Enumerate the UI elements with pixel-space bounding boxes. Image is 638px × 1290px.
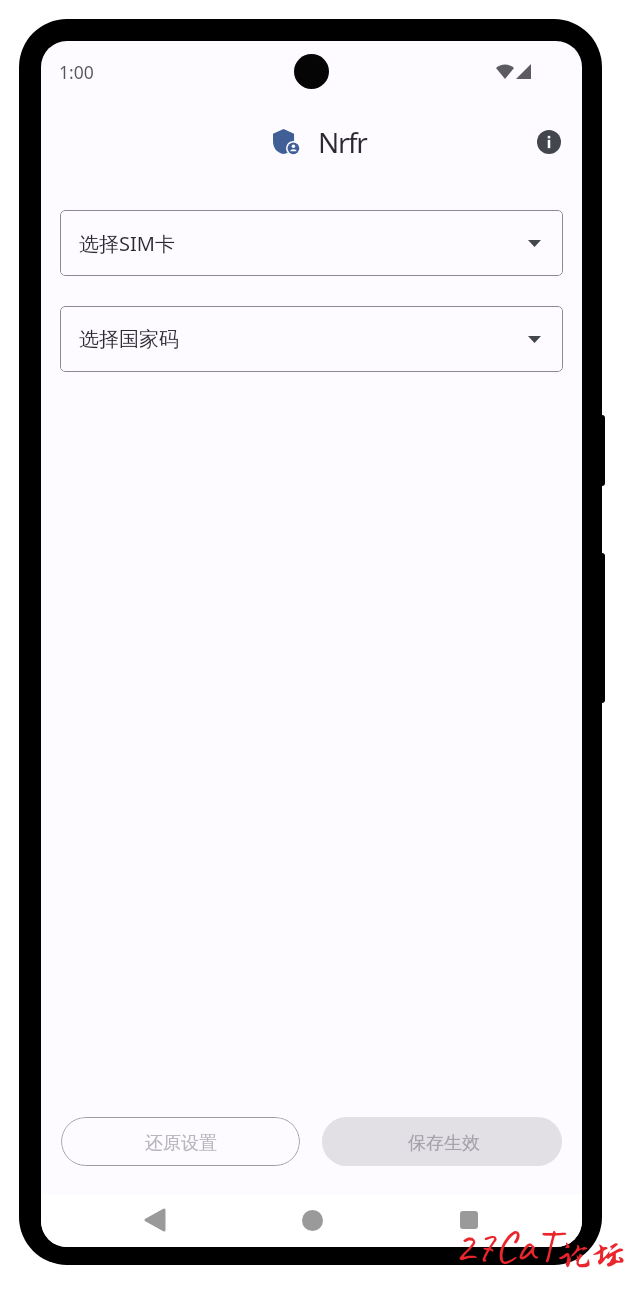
staticText: 1:00 (59, 60, 94, 84)
button[interactable]: Back (131, 1196, 179, 1244)
staticText: 还原设置 (145, 1132, 217, 1155)
button[interactable]: 选择SIM卡 (60, 210, 563, 276)
button[interactable]: About this app (527, 119, 571, 163)
button[interactable]: Home (288, 1196, 336, 1244)
staticText: Nrfr (318, 123, 367, 161)
staticText: 选择SIM卡 (79, 230, 175, 257)
button[interactable]: 还原设置 (61, 1117, 300, 1166)
button[interactable]: 保存生效 (322, 1117, 562, 1166)
button[interactable]: 选择国家码 (60, 306, 563, 372)
staticText: 27CaT (454, 1218, 557, 1275)
staticText: 保存生效 (408, 1132, 480, 1155)
staticText: 论坛 (557, 1237, 626, 1275)
staticText: 选择国家码 (79, 327, 179, 352)
button[interactable]: Recent apps (445, 1196, 493, 1244)
